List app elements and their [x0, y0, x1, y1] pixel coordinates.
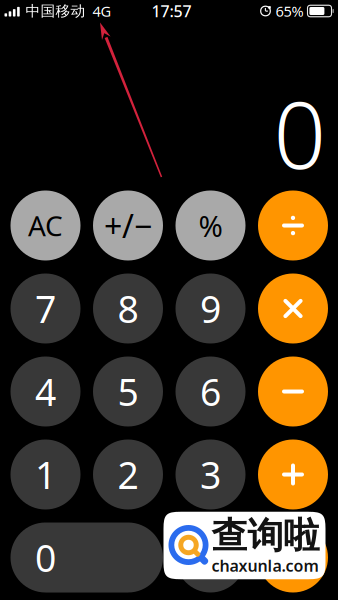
staticText: 0 [35, 533, 56, 582]
staticText: 7 [35, 284, 56, 333]
button[interactable]: 2 [93, 439, 163, 509]
button[interactable]: . [175, 522, 245, 592]
button[interactable]: Divide [258, 190, 328, 260]
button[interactable]: 6 [175, 356, 245, 426]
staticText: 4 [35, 367, 56, 416]
staticText: . [205, 533, 215, 582]
staticText: 中国移动 [25, 2, 85, 20]
button[interactable]: Add [258, 439, 328, 509]
staticText: % [198, 206, 222, 245]
staticText: 5 [117, 367, 138, 416]
staticText: 4G [92, 1, 111, 21]
button[interactable]: % [175, 190, 245, 260]
staticText: 9 [200, 284, 221, 333]
button[interactable]: 1 [10, 439, 80, 509]
staticText: 17:57 [151, 0, 191, 22]
staticText: +/− [104, 204, 152, 247]
staticText: 65% [275, 1, 303, 21]
staticText: AC [28, 207, 63, 244]
button[interactable]: 8 [93, 273, 163, 343]
staticText: 3 [200, 450, 221, 499]
staticText: 6 [200, 367, 221, 416]
staticText: 1 [35, 450, 56, 499]
button[interactable]: +/− [93, 190, 163, 260]
button[interactable]: Subtract [258, 356, 328, 426]
button[interactable]: 3 [175, 439, 245, 509]
button[interactable]: 0 [10, 522, 163, 592]
button[interactable]: Equals [258, 522, 328, 592]
staticText: 查询啦 [211, 514, 319, 558]
staticText: 0 [273, 72, 326, 194]
button[interactable]: AC [10, 190, 80, 260]
button[interactable]: 4 [10, 356, 80, 426]
button[interactable]: Multiply [258, 273, 328, 343]
staticText: 8 [117, 284, 138, 333]
button[interactable]: 7 [10, 273, 80, 343]
staticText: chaxunla.com [211, 555, 318, 576]
button[interactable]: 5 [93, 356, 163, 426]
staticText: 2 [117, 450, 138, 499]
button[interactable]: 9 [175, 273, 245, 343]
